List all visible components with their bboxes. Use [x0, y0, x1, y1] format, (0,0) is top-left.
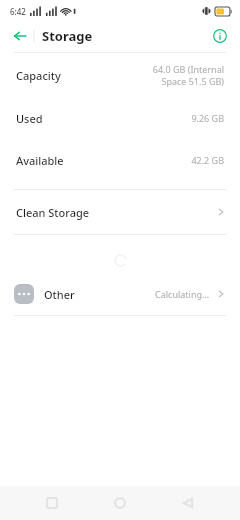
- staticText: Used: [16, 111, 43, 126]
- button[interactable]: Capacity: [0, 53, 240, 97]
- staticText: 9.26 GB: [191, 112, 224, 124]
- staticText: Other: [44, 287, 75, 302]
- staticText: Capacity: [16, 68, 61, 83]
- button[interactable]: Available: [0, 139, 240, 181]
- staticText: 64.0 GB (Internal Space 51.5 GB): [152, 63, 224, 88]
- button[interactable]: Back: [172, 487, 204, 519]
- staticText: Clean Storage: [16, 205, 90, 220]
- button[interactable]: Other: [0, 273, 240, 315]
- button[interactable]: Clean Storage: [0, 190, 240, 234]
- button[interactable]: Home: [104, 487, 136, 519]
- staticText: 42.2 GB: [191, 154, 224, 166]
- button[interactable]: Back: [8, 24, 32, 48]
- staticText: Available: [16, 153, 64, 168]
- staticText: Storage: [42, 27, 93, 45]
- button[interactable]: Used: [0, 97, 240, 139]
- staticText: Calculating...: [155, 288, 210, 300]
- button[interactable]: Recent apps: [36, 487, 68, 519]
- button[interactable]: Information: [208, 24, 232, 48]
- staticText: 6:42: [10, 6, 26, 17]
